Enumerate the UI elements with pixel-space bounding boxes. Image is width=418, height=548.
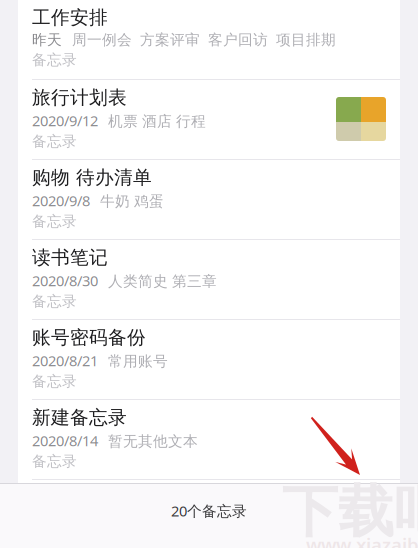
staticText: 备忘录: [32, 212, 77, 230]
staticText: 账号密码备份: [32, 326, 146, 349]
staticText: 常用账号: [108, 352, 168, 370]
staticText: 备忘录: [32, 452, 77, 470]
staticText: 2020/9/12: [32, 111, 98, 130]
staticText: 2020/9/8: [32, 191, 90, 210]
button[interactable]: 旅行计划表: [18, 80, 400, 159]
button[interactable]: 工作安排: [18, 0, 400, 79]
staticText: 读书笔记: [32, 246, 108, 269]
staticText: 周一例会 方案评审 客户回访 项目排期: [72, 31, 336, 49]
staticText: 备忘录: [32, 132, 77, 150]
staticText: 新建备忘录: [32, 406, 127, 429]
staticText: 2020/8/30: [32, 271, 98, 290]
staticText: 昨天: [32, 31, 62, 49]
staticText: 购物 待办清单: [32, 166, 152, 189]
staticText: 旅行计划表: [32, 86, 127, 109]
button[interactable]: 账号密码备份: [18, 320, 400, 399]
staticText: 20个备忘录: [171, 501, 247, 520]
staticText: 机票 酒店 行程: [108, 112, 206, 130]
button[interactable]: 购物 待办清单: [18, 160, 400, 239]
staticText: 暂无其他文本: [108, 432, 198, 450]
button[interactable]: 读书笔记: [18, 240, 400, 319]
staticText: 牛奶 鸡蛋: [100, 192, 164, 210]
staticText: 人类简史 第三章: [108, 272, 217, 290]
staticText: 备忘录: [32, 292, 77, 310]
button[interactable]: 新建备忘录: [18, 400, 400, 479]
staticText: 2020/8/14: [32, 431, 98, 450]
staticText: 2020/8/21: [32, 351, 98, 370]
staticText: www.xiazaiba.com: [306, 532, 418, 548]
staticText: 备忘录: [32, 51, 77, 69]
staticText: 下载吧: [282, 477, 418, 546]
staticText: 备忘录: [32, 372, 77, 390]
staticText: 工作安排: [32, 6, 108, 29]
